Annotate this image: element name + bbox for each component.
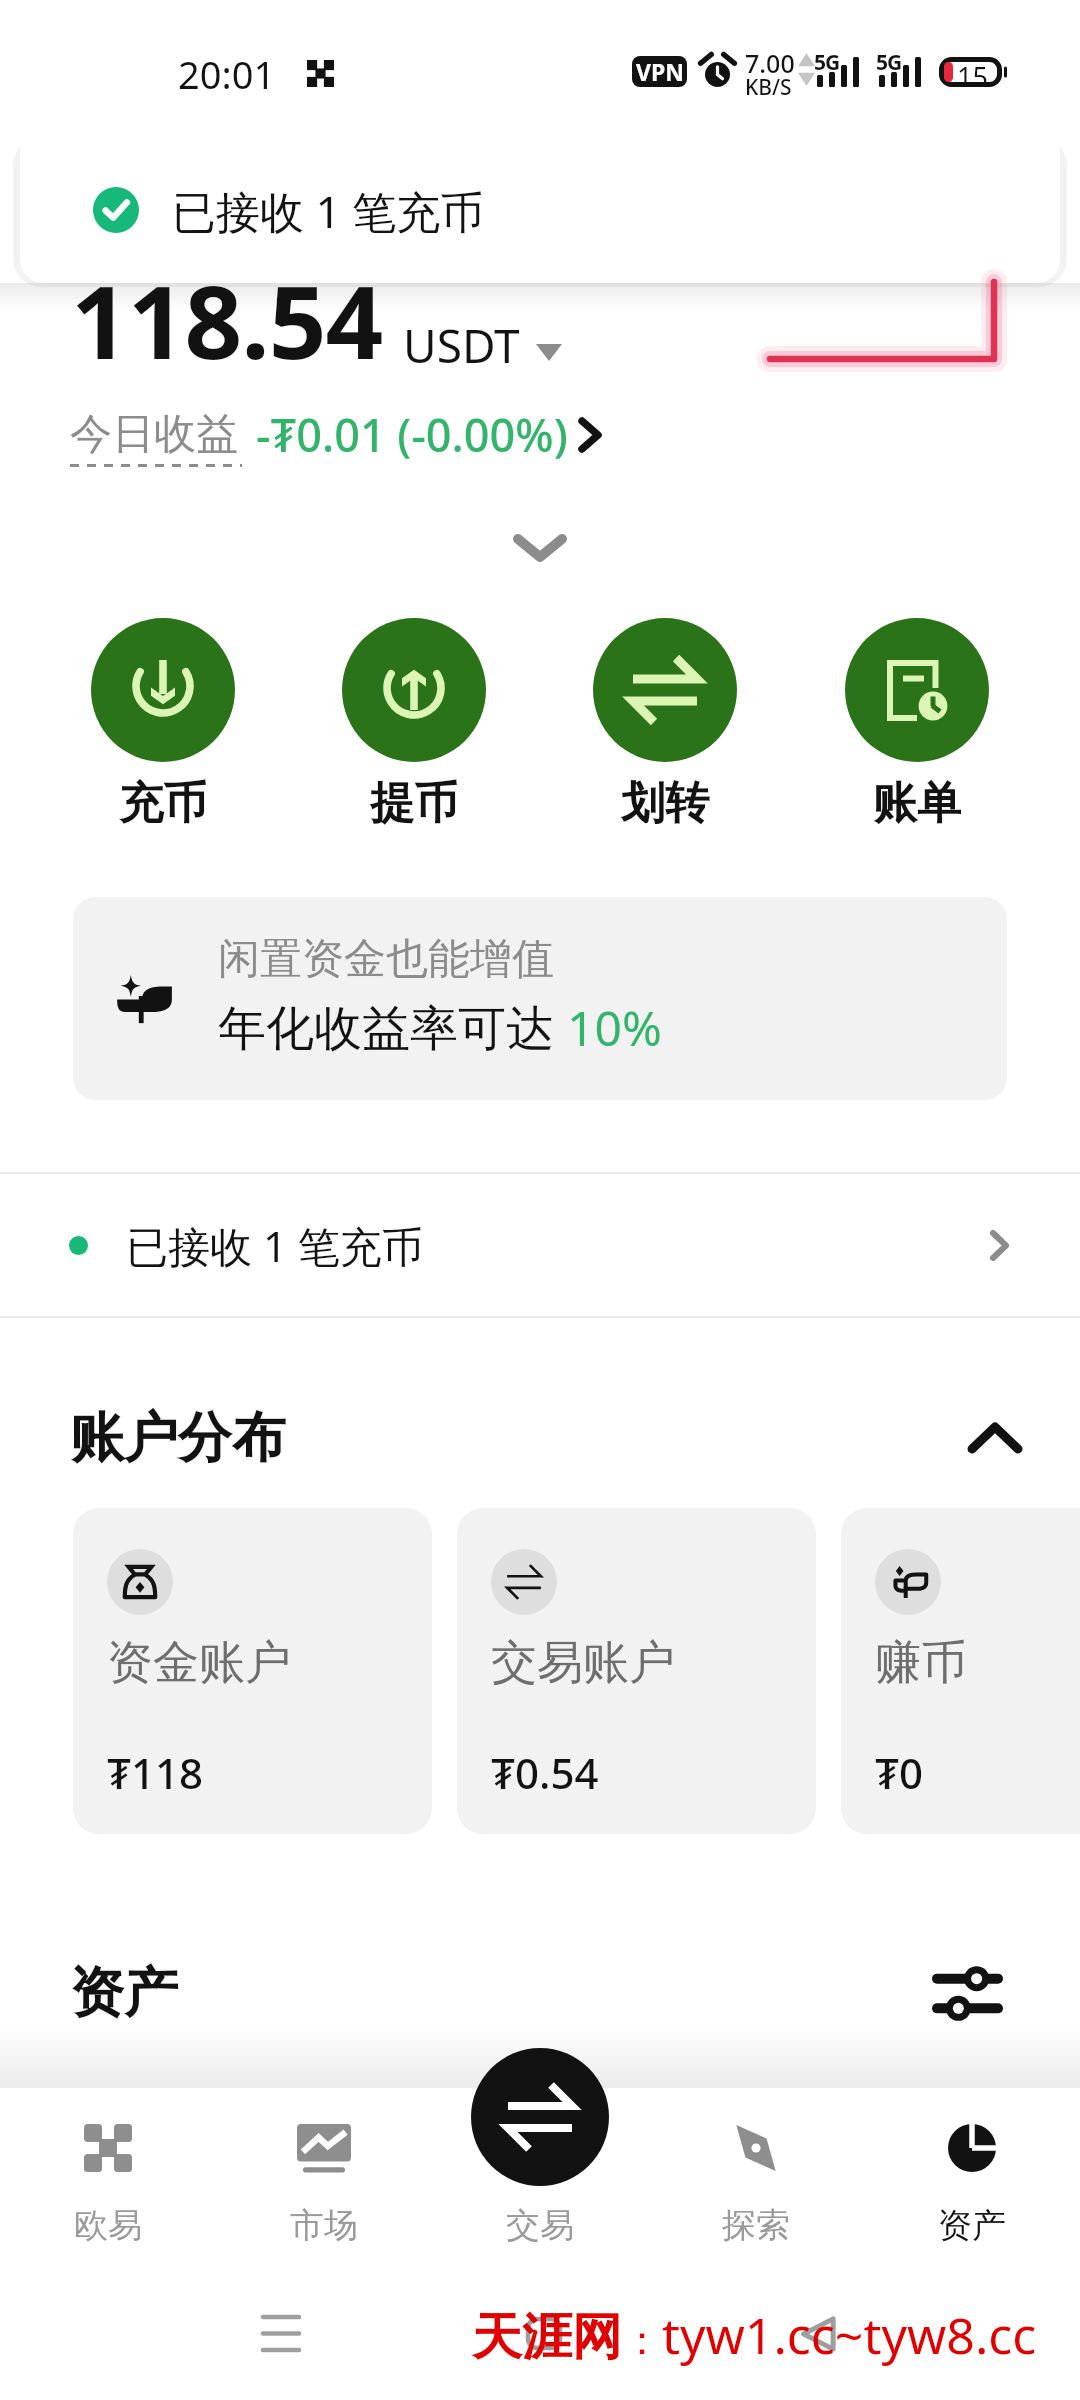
button[interactable]: 已接收 1 笔充币: [20, 130, 1060, 283]
button[interactable]: 划转: [575, 618, 755, 831]
button[interactable]: 账单: [827, 618, 1007, 831]
button[interactable]: 欧易: [0, 2098, 216, 2278]
button[interactable]: 闲置资金也能增值: [73, 897, 1007, 1100]
staticText: 已接收 1 笔充币: [172, 181, 485, 241]
staticText: 提币: [370, 776, 458, 831]
staticText: 118.54: [71, 251, 383, 389]
staticText: ₮118: [107, 1744, 204, 1801]
button[interactable]: 资金账户: [73, 1508, 432, 1834]
staticText: 交易账户: [491, 1634, 675, 1692]
staticText: 资产: [70, 1959, 178, 2027]
staticText: 7.00: [745, 46, 795, 80]
staticText: 探索: [722, 2204, 790, 2247]
staticText: 20:01: [178, 48, 276, 100]
staticText: 闲置资金也能增值: [218, 933, 554, 986]
staticText: 天涯网: [472, 2306, 622, 2369]
button[interactable]: Collapse accounts: [950, 1393, 1040, 1483]
staticText: 赚币: [875, 1634, 967, 1692]
staticText: 交易: [506, 2204, 574, 2247]
staticText: 15: [957, 58, 988, 95]
staticText: 充币: [119, 776, 207, 831]
staticText: 划转: [621, 776, 709, 831]
button[interactable]: 市场: [216, 2098, 432, 2278]
button[interactable]: Back: [778, 2297, 854, 2371]
staticText: 资产: [938, 2204, 1006, 2247]
staticText: VPN: [636, 56, 684, 87]
staticText: 已接收 1 笔充币: [126, 1217, 424, 1274]
staticText: -₮0.01 (-0.00%): [256, 404, 568, 465]
staticText: KB/S: [745, 73, 792, 102]
staticText: 账户分布: [70, 1404, 286, 1472]
staticText: 欧易: [74, 2204, 142, 2247]
button[interactable]: Home: [505, 2297, 581, 2371]
staticText: 账单: [873, 776, 961, 831]
button[interactable]: 资产: [864, 2098, 1080, 2278]
button[interactable]: 提币: [324, 618, 504, 831]
button[interactable]: 交易账户: [457, 1508, 816, 1834]
button[interactable]: 充币: [73, 618, 253, 831]
button[interactable]: 赚币: [841, 1508, 1080, 1834]
staticText: ₮0: [875, 1744, 924, 1801]
button[interactable]: Filter: [919, 1945, 1015, 2041]
staticText: ：: [622, 2315, 662, 2365]
staticText: 今日收益: [70, 408, 238, 461]
staticText: 10%: [567, 995, 662, 1060]
staticText: USDT: [403, 314, 520, 377]
staticText: 5G: [814, 48, 840, 77]
button[interactable]: 探索: [648, 2098, 864, 2278]
button[interactable]: 已接收 1 笔充币: [0, 1174, 1080, 1316]
staticText: tyw1.cc~tyw8.cc: [662, 2301, 1037, 2369]
button[interactable]: Trade: [471, 2048, 609, 2186]
staticText: 市场: [290, 2204, 358, 2247]
staticText: 资金账户: [107, 1634, 291, 1692]
staticText: ₮0.54: [491, 1744, 599, 1801]
staticText: 年化收益率可达: [218, 994, 567, 1060]
button[interactable]: 交易: [432, 2098, 648, 2278]
button[interactable]: 今日收益: [70, 404, 600, 465]
button[interactable]: Recents: [243, 2297, 319, 2371]
button[interactable]: Collapse: [500, 510, 580, 586]
staticText: 5G: [876, 48, 902, 77]
